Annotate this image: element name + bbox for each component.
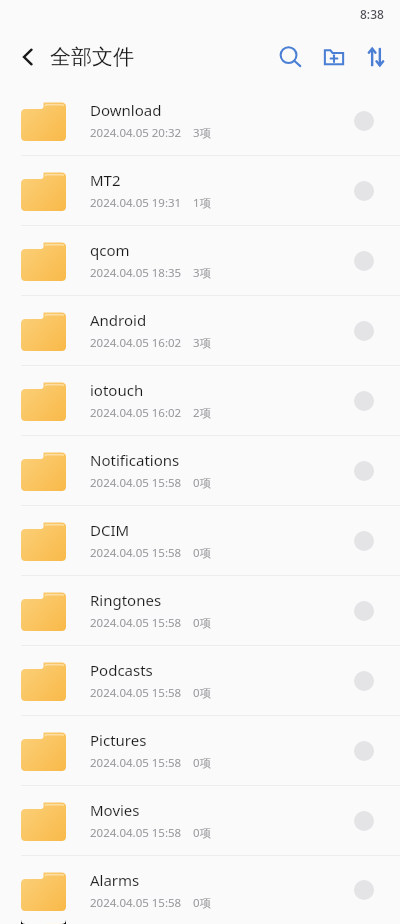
staticText: 2024.04.05 16:02 [90,405,182,421]
button[interactable]: Podcasts [0,646,400,715]
staticText: 0项 [193,825,212,841]
button[interactable]: Ringtones [0,576,400,645]
button[interactable]: New folder [312,35,356,79]
staticText: 2024.04.05 15:58 [90,475,182,491]
button[interactable]: Select Download [346,103,382,139]
staticText: 0项 [193,615,212,631]
button[interactable]: Select Notifications [346,453,382,489]
button[interactable]: Download [0,86,400,155]
staticText: 2024.04.05 15:58 [90,685,182,701]
staticText: MT2 [90,170,121,190]
button[interactable]: Select qcom [346,243,382,279]
staticText: 2024.04.05 20:32 [90,125,182,141]
staticText: 0项 [193,895,212,911]
staticText: 0项 [193,545,212,561]
staticText: 2024.04.05 15:58 [90,615,182,631]
button[interactable]: Select Alarms [346,872,382,908]
button[interactable]: Select Pictures [346,733,382,769]
staticText: 2024.04.05 18:35 [90,265,182,281]
staticText: 2024.04.05 15:58 [90,895,182,911]
staticText: 2024.04.05 15:58 [90,755,182,771]
button[interactable]: Select Android [346,313,382,349]
staticText: 1项 [193,195,212,211]
staticText: 0项 [193,755,212,771]
button[interactable]: Search [268,35,312,79]
staticText: 3项 [193,335,212,351]
staticText: Pictures [90,730,147,750]
staticText: Podcasts [90,660,153,680]
staticText: 0项 [193,475,212,491]
staticText: 2024.04.05 16:02 [90,335,182,351]
staticText: DCIM [90,520,130,540]
staticText: 2024.04.05 15:58 [90,545,182,561]
button[interactable]: Sort [356,35,396,79]
staticText: Android [90,310,147,330]
staticText: Ringtones [90,590,162,610]
staticText: qcom [90,240,130,260]
staticText: 8:38 [360,6,384,22]
staticText: 0项 [193,685,212,701]
staticText: 2024.04.05 19:31 [90,195,182,211]
button[interactable]: Select Movies [346,803,382,839]
button[interactable]: Select DCIM [346,523,382,559]
button[interactable]: iotouch [0,366,400,435]
staticText: 3项 [193,265,212,281]
button[interactable]: Pictures [0,716,400,785]
button[interactable]: Select MT2 [346,173,382,209]
button[interactable]: Select Ringtones [346,593,382,629]
button[interactable]: Select Podcasts [346,663,382,699]
staticText: 2024.04.05 15:58 [90,825,182,841]
staticText: Movies [90,800,140,820]
button[interactable]: qcom [0,226,400,295]
button[interactable]: Alarms [0,856,400,924]
staticText: 3项 [193,125,212,141]
staticText: Download [90,100,162,120]
button[interactable]: Back [8,37,48,77]
button[interactable]: Notifications [0,436,400,505]
button[interactable]: DCIM [0,506,400,575]
staticText: Notifications [90,450,180,470]
button[interactable]: Select iotouch [346,383,382,419]
button[interactable]: Android [0,296,400,365]
staticText: 2项 [193,405,212,421]
button[interactable]: MT2 [0,156,400,225]
staticText: 全部文件 [50,44,134,70]
staticText: iotouch [90,380,144,400]
button[interactable]: Movies [0,786,400,855]
staticText: Alarms [90,870,140,890]
